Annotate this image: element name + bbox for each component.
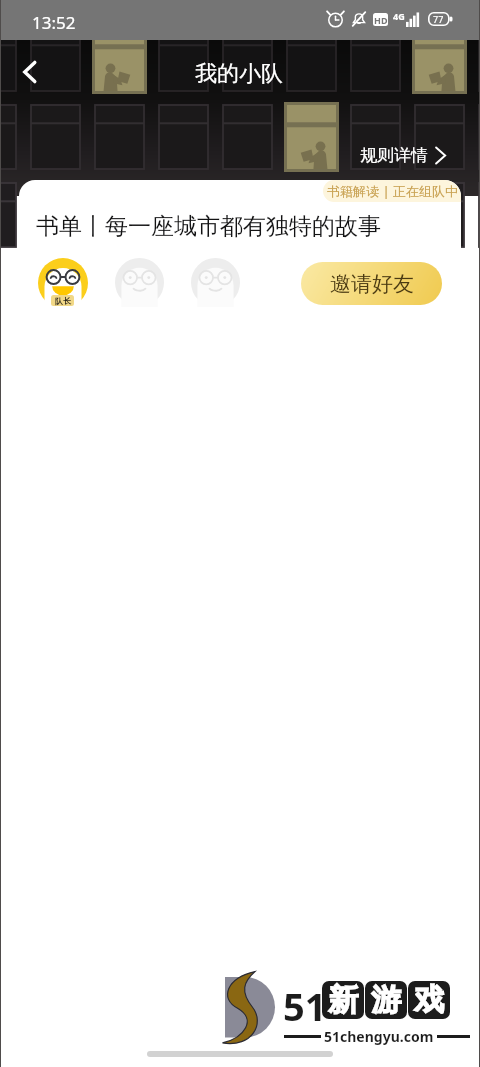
staticText: 队长 bbox=[55, 296, 71, 306]
staticText: 51chengyu.com bbox=[324, 1027, 434, 1046]
staticText: 游 bbox=[371, 981, 401, 1019]
staticText: 戏 bbox=[414, 981, 444, 1019]
staticText: 邀请好友 bbox=[330, 271, 414, 297]
button[interactable]: 邀请好友 bbox=[301, 262, 442, 305]
button[interactable]: 规则详情 bbox=[356, 142, 450, 169]
staticText: HD bbox=[374, 14, 388, 26]
staticText: 77 bbox=[433, 13, 444, 25]
staticText: 书籍解读 | 正在组队中 bbox=[327, 182, 458, 200]
staticText: 13:52 bbox=[32, 11, 76, 34]
staticText: 规则详情 bbox=[360, 145, 428, 166]
staticText: 新 bbox=[328, 981, 358, 1019]
staticText: 书单丨每一座城市都有独特的故事 bbox=[36, 212, 381, 241]
staticText: 51 bbox=[283, 980, 327, 1032]
staticText: 4G bbox=[393, 10, 405, 22]
button[interactable]: Back bbox=[6, 48, 54, 96]
staticText: 我的小队 bbox=[195, 60, 283, 88]
